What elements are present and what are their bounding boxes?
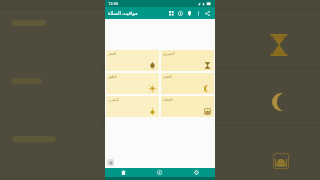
button[interactable]: Compass <box>176 9 185 18</box>
staticText: المغرب <box>108 98 119 102</box>
button[interactable]: العصر <box>161 73 214 94</box>
button[interactable]: Settings <box>178 168 215 177</box>
staticText: الشروق <box>163 52 175 56</box>
button[interactable]: Location <box>185 9 194 18</box>
staticText: 12:06 <box>108 1 119 6</box>
button[interactable]: Qibla <box>141 168 178 177</box>
staticText: الفجر <box>108 52 116 56</box>
staticText: الظهر <box>108 75 117 79</box>
button[interactable]: الشروق <box>161 50 214 71</box>
staticText: العشاء <box>163 98 173 102</box>
button[interactable]: الفجر <box>106 50 159 71</box>
button[interactable]: المغرب <box>106 96 159 117</box>
staticText: العصر <box>163 75 172 79</box>
button[interactable]: Calendar <box>167 9 176 18</box>
button[interactable]: More options <box>194 9 203 18</box>
button[interactable]: Add <box>107 159 114 166</box>
staticText: مواقيت الصلاة <box>108 10 138 17</box>
button[interactable]: الظهر <box>106 73 159 94</box>
button[interactable]: العشاء <box>161 96 214 117</box>
button[interactable]: Share <box>203 9 212 18</box>
button[interactable]: Home <box>105 168 141 177</box>
